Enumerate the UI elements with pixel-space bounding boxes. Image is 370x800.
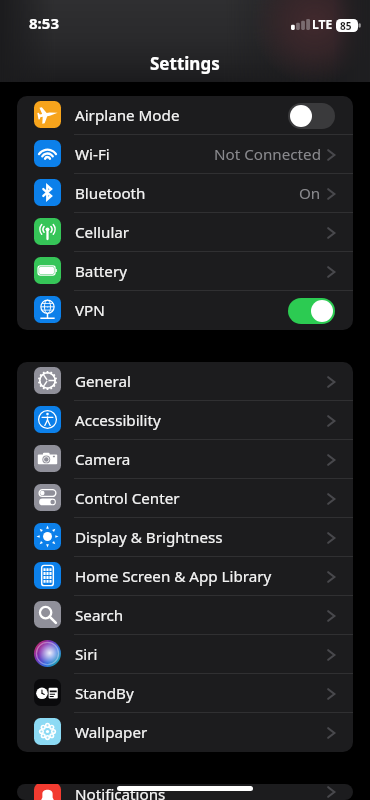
staticText: Settings	[150, 52, 220, 75]
button[interactable]: StandBy	[17, 674, 353, 713]
staticText: Display & Brightness	[75, 527, 223, 548]
button[interactable]: VPN	[17, 291, 353, 330]
staticText: Camera	[75, 449, 131, 470]
button[interactable]: Notifications	[17, 784, 353, 800]
staticText: Siri	[75, 644, 98, 665]
button[interactable]: Camera	[17, 440, 353, 479]
button[interactable]: General	[17, 362, 353, 401]
button[interactable]: Siri	[17, 635, 353, 674]
staticText: Notifications	[75, 784, 166, 800]
button[interactable]: Accessibility	[17, 401, 353, 440]
staticText: On	[299, 183, 321, 204]
staticText: Not Connected	[214, 144, 321, 165]
staticText: VPN	[75, 300, 105, 321]
button[interactable]: Home Screen & App Library	[17, 557, 353, 596]
staticText: Accessibility	[75, 410, 161, 431]
button[interactable]: Cellular	[17, 213, 353, 252]
staticText: General	[75, 371, 131, 392]
staticText: Battery	[75, 261, 127, 282]
staticText: StandBy	[75, 683, 134, 704]
staticText: Wallpaper	[75, 722, 148, 743]
staticText: Airplane Mode	[75, 105, 180, 126]
staticText: Bluetooth	[75, 183, 146, 204]
staticText: Search	[75, 605, 124, 626]
staticText: Wi-Fi	[75, 144, 110, 165]
staticText: Control Center	[75, 488, 180, 509]
button[interactable]: Bluetooth	[17, 174, 353, 213]
staticText: LTE	[312, 16, 333, 32]
button[interactable]: Control Center	[17, 479, 353, 518]
staticText: 85	[340, 19, 352, 32]
button[interactable]: Search	[17, 596, 353, 635]
button[interactable]: Toggle	[288, 103, 335, 129]
staticText: Home Screen & App Library	[75, 566, 272, 587]
button[interactable]: Battery	[17, 252, 353, 291]
staticText: Cellular	[75, 222, 130, 243]
button[interactable]: Toggle	[288, 298, 335, 324]
button[interactable]: Wi-Fi	[17, 135, 353, 174]
button[interactable]: Airplane Mode	[17, 96, 353, 135]
staticText: 8:53	[29, 13, 59, 33]
button[interactable]: Wallpaper	[17, 713, 353, 752]
button[interactable]: Display & Brightness	[17, 518, 353, 557]
